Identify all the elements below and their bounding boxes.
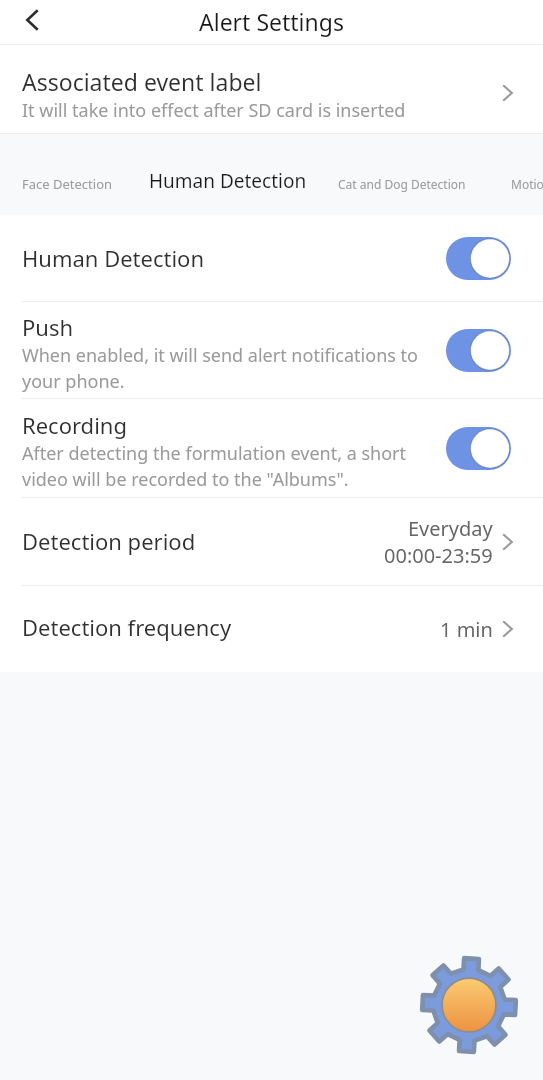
button[interactable]: Associated event label — [0, 45, 543, 133]
staticText: It will take into effect after SD card i… — [22, 98, 406, 123]
button[interactable] — [446, 427, 511, 470]
button[interactable]: Cat and Dog Detection — [338, 176, 466, 192]
button[interactable]: Recording — [0, 399, 543, 497]
staticText: Recording — [22, 410, 127, 440]
button[interactable]: Face Detection — [22, 175, 113, 193]
staticText: Motion Detection — [511, 176, 543, 192]
staticText: Detection period — [22, 526, 196, 556]
button[interactable]: Settings — [420, 956, 518, 1054]
button[interactable]: Detection frequency — [0, 586, 543, 672]
staticText: Detection frequency — [22, 612, 232, 642]
staticText: Face Detection — [22, 175, 113, 193]
staticText: 1 min — [440, 616, 493, 643]
staticText: Alert Settings — [199, 6, 344, 37]
button[interactable] — [446, 237, 511, 280]
staticText: Human Detection — [22, 243, 205, 273]
button[interactable]: Human Detection — [0, 215, 543, 301]
staticText: Push — [22, 312, 74, 342]
button[interactable]: Motion Detection — [511, 176, 543, 192]
button[interactable]: Push — [0, 302, 543, 398]
button[interactable]: Detection period — [0, 498, 543, 585]
staticText: Cat and Dog Detection — [338, 176, 466, 192]
staticText: Human Detection — [149, 168, 307, 194]
staticText: After detecting the formulation event, a… — [22, 441, 422, 491]
staticText: When enabled, it will send alert notific… — [22, 343, 422, 393]
button[interactable]: Human Detection — [149, 168, 307, 194]
staticText: Associated event label — [22, 66, 262, 97]
staticText: Everyday — [408, 515, 493, 542]
staticText: 00:00-23:59 — [384, 542, 493, 569]
button[interactable] — [446, 329, 511, 372]
button[interactable]: Back — [0, 0, 66, 44]
